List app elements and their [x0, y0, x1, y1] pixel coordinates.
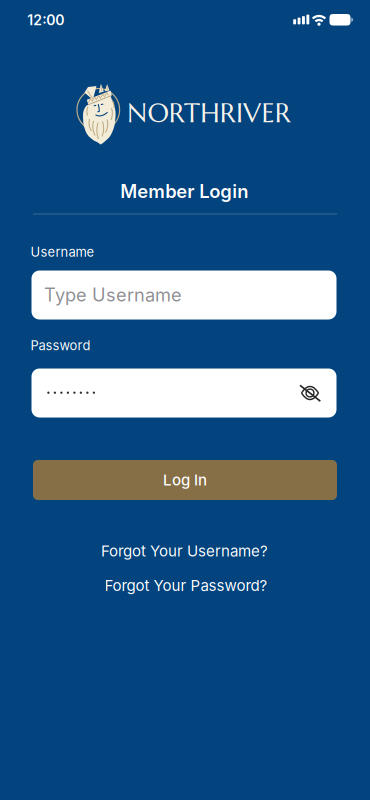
staticText: Type Username [44, 284, 182, 306]
button[interactable]: Forgot Your Username? [101, 542, 268, 560]
staticText: Forgot Your Username? [101, 542, 268, 560]
button[interactable]: Forgot Your Password? [104, 576, 267, 595]
staticText: 12:00 [27, 12, 64, 28]
staticText: Log In [163, 471, 207, 489]
button[interactable] [31, 368, 336, 417]
button[interactable]: Type Username [31, 270, 336, 319]
staticText: NORTHRIVER [127, 96, 291, 130]
staticText: Password [30, 338, 90, 353]
staticText: Forgot Your Password? [104, 576, 267, 595]
button[interactable]: Show Password [295, 379, 325, 407]
button[interactable]: Log In [33, 460, 337, 500]
staticText: Member Login [120, 180, 248, 203]
staticText: Username [30, 244, 94, 260]
